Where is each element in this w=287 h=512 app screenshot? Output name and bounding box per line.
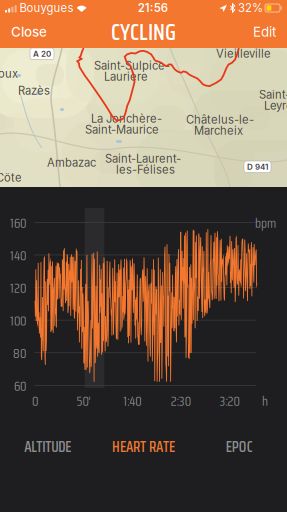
- staticText: Saint-Sulpice-: [94, 59, 170, 73]
- button[interactable]: Close: [0, 17, 58, 47]
- button[interactable]: EPOC: [191, 430, 287, 464]
- staticText: 0: [32, 390, 38, 411]
- staticText: A 20: [33, 49, 51, 59]
- staticText: les-Félises: [116, 163, 175, 177]
- staticText: Marcheix: [194, 124, 243, 138]
- staticText: Razès: [18, 84, 50, 98]
- staticText: ALTITUDE: [24, 435, 71, 459]
- staticText: Saint-Maurice: [85, 123, 159, 137]
- staticText: bpm: [255, 212, 276, 233]
- staticText: 21:56: [138, 1, 168, 15]
- staticText: 100: [10, 310, 26, 331]
- staticText: 32%: [238, 1, 263, 15]
- staticText: Edit: [253, 24, 276, 40]
- staticText: 160: [10, 212, 26, 233]
- staticText: EPOC: [226, 435, 253, 459]
- staticText: 3:20: [219, 390, 239, 411]
- staticText: 140: [10, 245, 26, 266]
- button[interactable]: ALTITUDE: [0, 430, 96, 464]
- staticText: 1:40: [123, 390, 141, 411]
- staticText: 120: [10, 278, 26, 299]
- staticText: Saint-Laurent-: [105, 152, 181, 166]
- staticText: Close: [11, 24, 47, 40]
- staticText: h: [262, 390, 268, 411]
- staticText: HEART RATE: [112, 435, 175, 459]
- button[interactable]: HEART RATE: [96, 430, 191, 464]
- staticText: 60: [14, 375, 26, 396]
- staticText: CYCLING: [111, 14, 176, 50]
- staticText: Côte: [0, 171, 22, 185]
- staticText: Saint-D: [259, 88, 287, 102]
- button[interactable]: Edit: [242, 17, 287, 47]
- staticText: Châtelus-le-: [186, 113, 254, 127]
- staticText: Bouygues: [20, 1, 74, 15]
- staticText: Leyre: [264, 99, 287, 113]
- staticText: Vieilleville: [216, 47, 271, 61]
- staticText: D 941: [247, 162, 268, 172]
- staticText: 80: [13, 343, 26, 364]
- staticText: 2:30: [171, 390, 191, 411]
- staticText: La Jonchère-: [91, 112, 162, 126]
- staticText: Ambazac: [47, 156, 96, 170]
- staticText: 50': [77, 390, 91, 411]
- staticText: oux: [0, 67, 18, 81]
- staticText: Laurière: [104, 70, 148, 84]
